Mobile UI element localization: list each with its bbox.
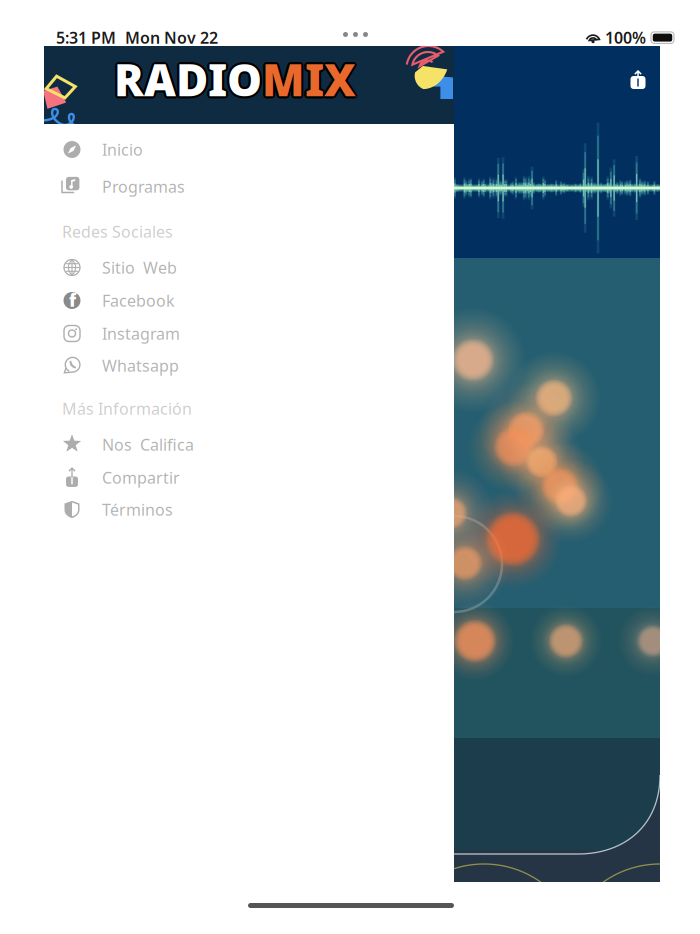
button[interactable]: Share xyxy=(626,68,650,92)
staticText: RADIO xyxy=(116,50,264,108)
staticText: MIX xyxy=(260,50,354,108)
button[interactable]: Compartir xyxy=(44,461,454,494)
staticText: MIX xyxy=(264,48,358,107)
staticText: Facebook xyxy=(102,290,175,311)
button[interactable]: Términos xyxy=(44,493,454,526)
staticText: MIX xyxy=(262,52,356,111)
staticText: RADIO xyxy=(112,50,260,108)
staticText: Programas xyxy=(102,176,185,197)
staticText: RADIO xyxy=(112,52,260,110)
staticText: RADIO xyxy=(114,48,262,106)
staticText: Inicio xyxy=(102,139,143,160)
staticText: MIX xyxy=(264,52,358,110)
staticText: RADIO xyxy=(112,48,260,107)
button[interactable]: Programas xyxy=(44,170,454,203)
staticText: Compartir xyxy=(102,467,180,488)
button[interactable]: Inicio xyxy=(44,133,454,166)
button[interactable]: Instagram xyxy=(44,317,454,350)
staticText: MIX xyxy=(260,52,354,110)
staticText: Sitio Web xyxy=(102,257,177,278)
staticText: MIX xyxy=(260,48,354,107)
button[interactable]: Sitio Web xyxy=(44,251,454,284)
staticText: MIX xyxy=(264,50,358,108)
staticText: Más Información xyxy=(62,398,192,419)
button[interactable]: f xyxy=(44,284,454,317)
staticText: Mon Nov 22 xyxy=(125,27,218,48)
staticText: RADIO xyxy=(114,50,262,108)
staticText: Whatsapp xyxy=(102,355,179,376)
staticText: 100% xyxy=(605,27,646,48)
staticText: RADIO xyxy=(116,48,264,107)
button[interactable]: Whatsapp xyxy=(44,349,454,382)
staticText: Instagram xyxy=(102,323,180,344)
staticText: Términos xyxy=(102,499,173,520)
staticText: f xyxy=(69,289,76,312)
staticText: Nos Califica xyxy=(102,434,194,455)
staticText: MIX xyxy=(262,50,356,108)
staticText: Redes Sociales xyxy=(62,221,173,242)
staticText: 5:31 PM xyxy=(56,27,116,48)
button[interactable]: Nos Califica xyxy=(44,428,454,461)
staticText: RADIO xyxy=(114,52,262,111)
staticText: RADIO xyxy=(116,52,264,110)
staticText: MIX xyxy=(262,48,356,106)
